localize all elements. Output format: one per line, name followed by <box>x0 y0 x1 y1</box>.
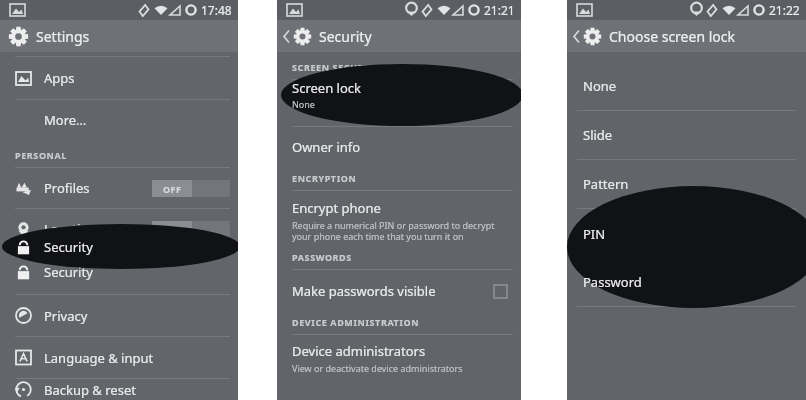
button[interactable]: Settings <box>0 20 238 52</box>
staticText: Privacy <box>44 307 88 325</box>
button[interactable]: Navigate up <box>567 20 806 52</box>
staticText: Backup & reset <box>44 381 136 399</box>
staticText: OFF <box>163 224 182 236</box>
staticText: PIN <box>583 225 606 243</box>
staticText: DEVICE ADMINISTRATION <box>292 316 420 328</box>
staticText: 21:21 <box>484 2 515 18</box>
staticText: Language & input <box>44 349 154 367</box>
staticText: Password <box>583 273 642 291</box>
button[interactable]: Encrypt phone <box>277 191 521 248</box>
staticText: Pattern <box>583 175 629 193</box>
staticText: PASSWORDS <box>292 251 352 263</box>
button[interactable]: PIN <box>567 210 806 258</box>
staticText: Screen lock <box>292 79 361 97</box>
staticText: Settings <box>36 27 90 46</box>
button[interactable]: Backup & reset <box>0 379 238 400</box>
button[interactable]: Security <box>0 226 238 268</box>
button[interactable]: Apps <box>0 57 238 99</box>
staticText: Security <box>319 27 372 46</box>
button[interactable]: Privacy <box>0 295 238 336</box>
staticText: Device administrators <box>292 342 426 360</box>
staticText: PERSONAL <box>15 149 67 161</box>
other: Navigate up <box>283 30 290 43</box>
button[interactable]: None <box>567 62 806 110</box>
button[interactable]: Password <box>567 258 806 306</box>
staticText: Encrypt phone <box>292 199 381 217</box>
staticText: Apps <box>44 69 75 87</box>
button[interactable]: Pattern <box>567 160 806 208</box>
button[interactable]: Screen lock <box>277 79 521 110</box>
button[interactable]: Location <box>0 209 238 249</box>
staticText: Security <box>44 263 93 281</box>
staticText: OFF <box>163 183 182 195</box>
staticText: 21:22 <box>769 2 800 18</box>
button[interactable]: Owner info <box>277 127 521 167</box>
button[interactable]: Language & input <box>0 337 238 378</box>
staticText: Owner info <box>292 138 361 156</box>
staticText: Security <box>44 238 93 256</box>
staticText: Choose screen lock <box>609 27 735 46</box>
staticText: 17:48 <box>201 2 232 18</box>
button[interactable]: Security <box>0 250 238 294</box>
staticText: Profiles <box>44 179 90 197</box>
staticText: Slide <box>583 126 613 144</box>
staticText: Location <box>44 220 97 238</box>
staticText: None <box>583 77 617 95</box>
button[interactable]: Make passwords visible <box>277 270 521 312</box>
staticText: SCREEN SECURITY <box>292 61 381 73</box>
button[interactable]: Slide <box>567 111 806 159</box>
staticText: More… <box>44 111 87 129</box>
other: Navigate up <box>573 30 580 43</box>
button[interactable]: Navigate up <box>277 20 521 52</box>
button[interactable]: More… <box>0 100 238 140</box>
staticText: None <box>292 98 315 110</box>
button[interactable]: Profiles <box>0 168 238 208</box>
staticText: Require a numerical PIN or password to d… <box>292 219 511 242</box>
button[interactable]: Device administrators <box>277 335 521 374</box>
staticText: Make passwords visible <box>292 282 436 300</box>
staticText: ENCRYPTION <box>292 172 357 184</box>
staticText: View or deactivate device administrators <box>292 362 463 374</box>
